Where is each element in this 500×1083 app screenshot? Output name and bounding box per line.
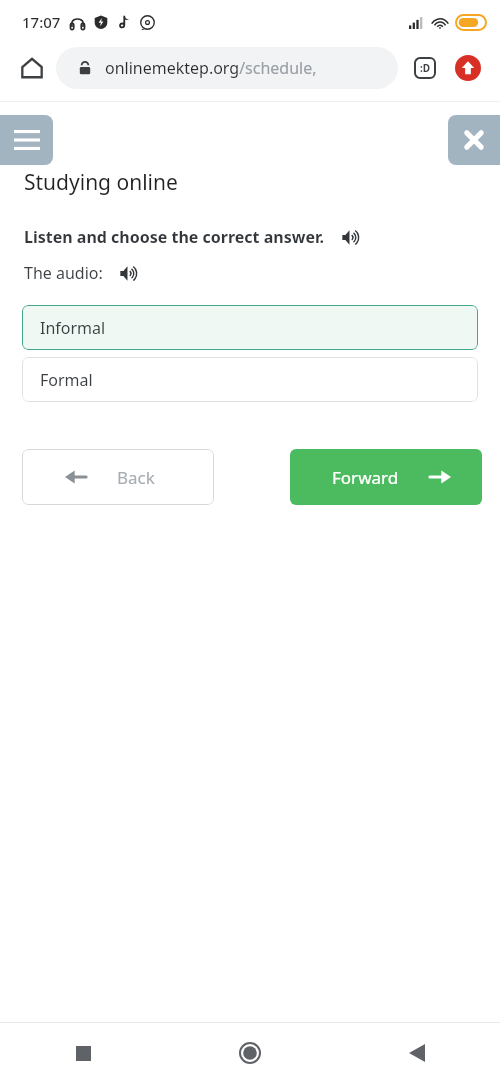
- button[interactable]: Play the audio: [117, 262, 139, 284]
- button[interactable]: Recents: [0, 1023, 166, 1083]
- staticText: Informal: [40, 317, 106, 339]
- button[interactable]: Update: [448, 48, 488, 88]
- staticText: :D: [420, 61, 431, 75]
- button[interactable]: Formal: [22, 357, 478, 402]
- button[interactable]: Play audio: [339, 226, 361, 248]
- button[interactable]: Home: [166, 1023, 333, 1083]
- button[interactable]: Back: [22, 449, 214, 505]
- staticText: onlinemektep.org/schedule,: [105, 57, 317, 79]
- button[interactable]: Close: [448, 115, 500, 165]
- staticText: 17:07: [22, 12, 61, 32]
- staticText: Studying online: [24, 168, 178, 197]
- button[interactable]: Forward: [290, 449, 482, 505]
- staticText: Formal: [40, 369, 93, 391]
- staticText: Listen and choose the correct answer.: [24, 226, 325, 248]
- button[interactable]: Informal: [22, 305, 478, 350]
- button[interactable]: Back: [333, 1023, 500, 1083]
- staticText: The audio:: [24, 262, 103, 284]
- button[interactable]: onlinemektep.org/schedule,: [56, 47, 398, 89]
- staticText: Back: [117, 466, 155, 489]
- staticText: Forward: [332, 466, 399, 489]
- button[interactable]: Home: [8, 44, 56, 92]
- button[interactable]: Menu: [0, 115, 53, 165]
- button[interactable]: Emoji tab switcher: [404, 47, 446, 89]
